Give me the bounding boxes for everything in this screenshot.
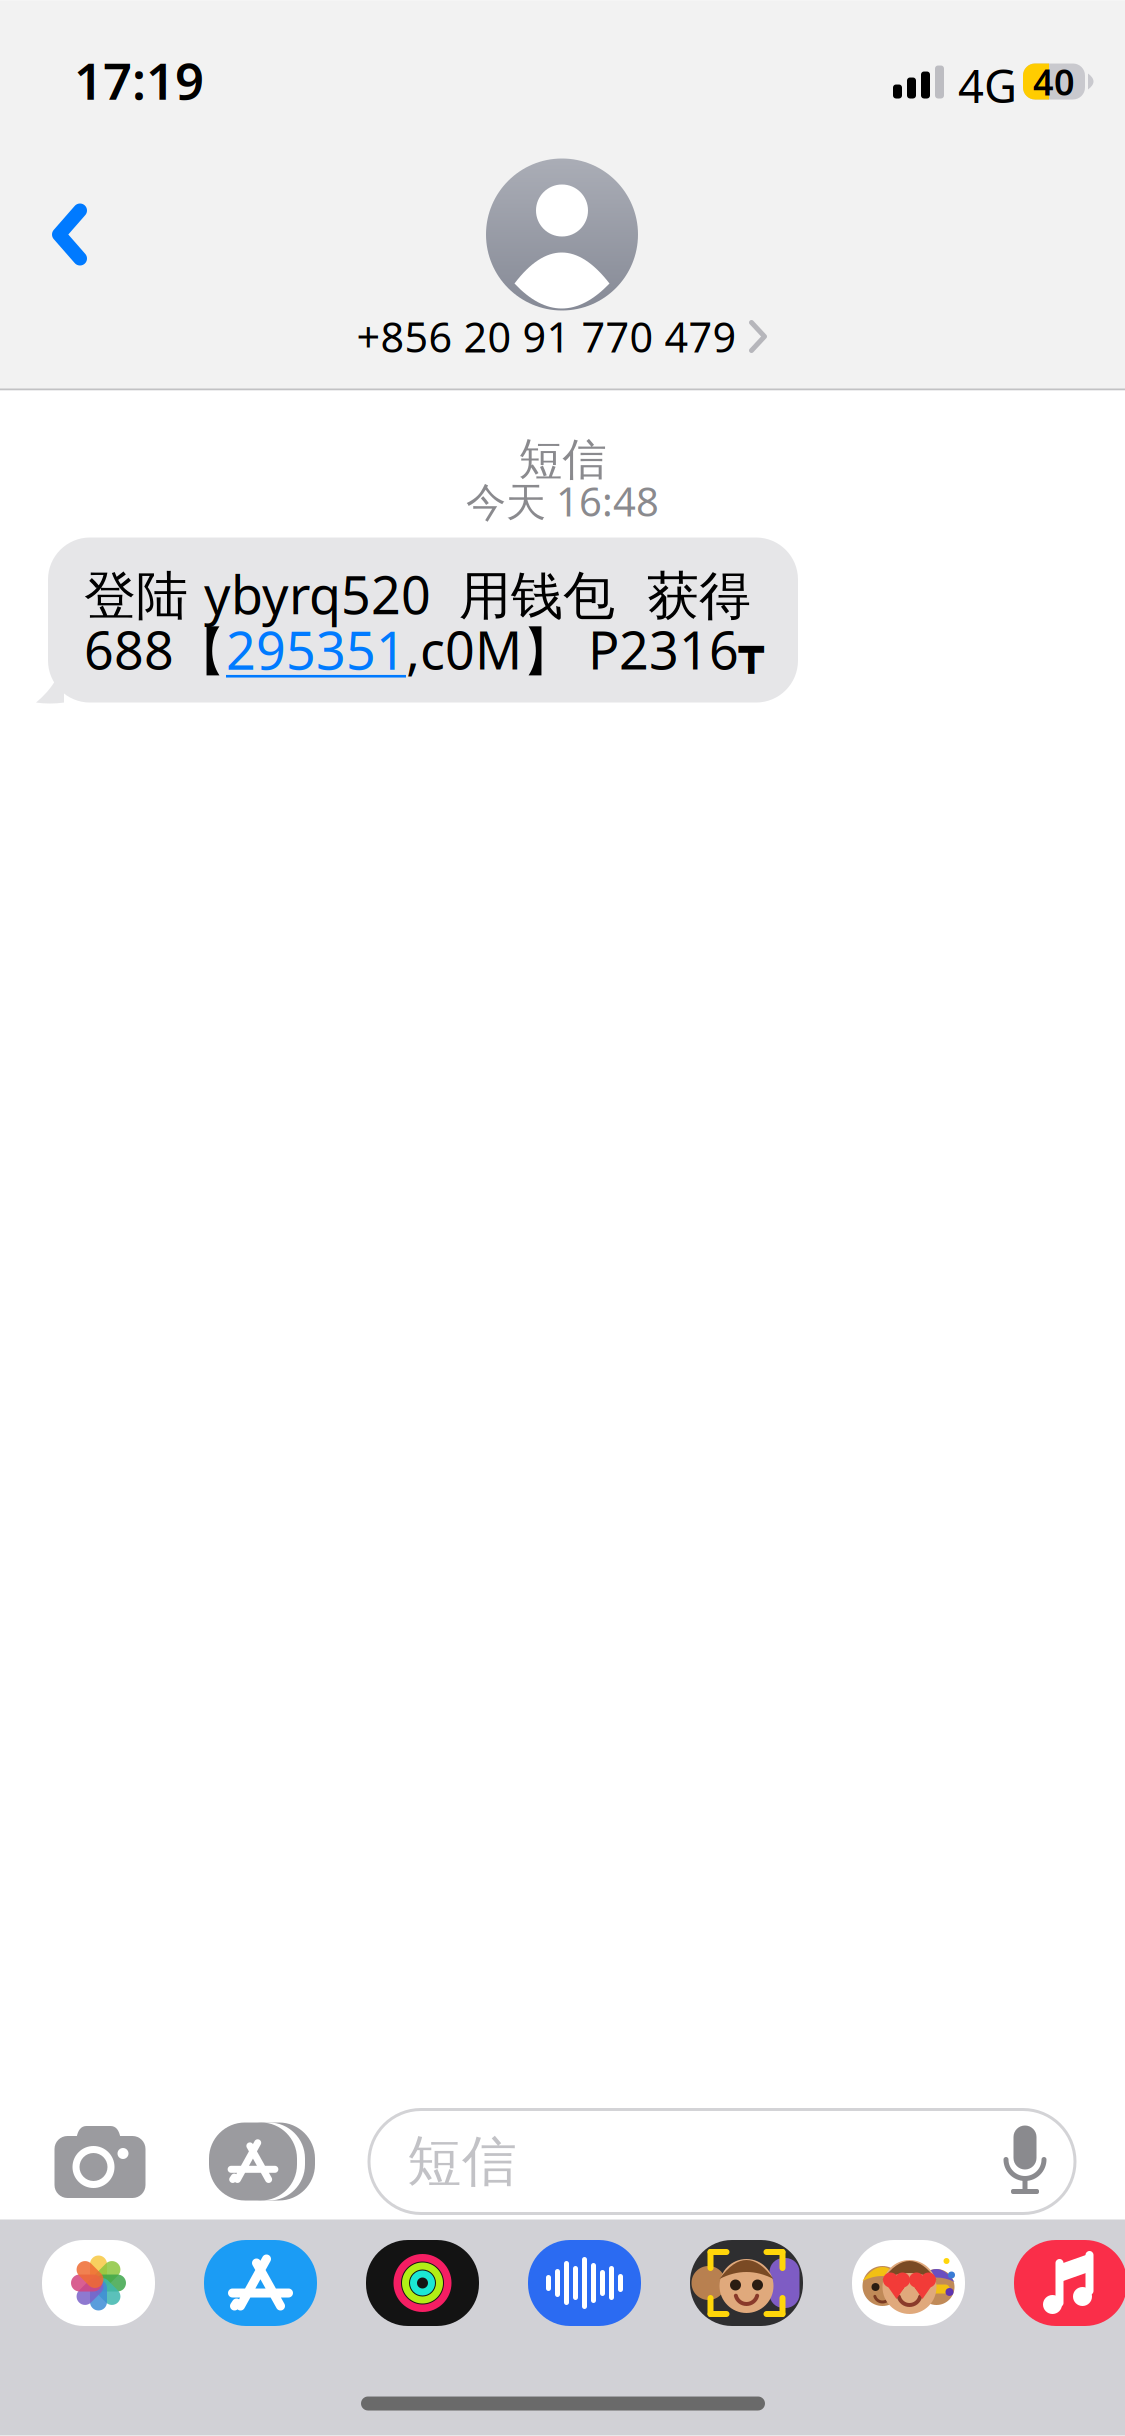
button[interactable]: Back: [4, 169, 134, 299]
staticText: 今天 16:48: [466, 474, 659, 528]
button[interactable]: Camera: [42, 2103, 158, 2219]
staticText: 688【: [84, 615, 226, 684]
staticText: ┳: [739, 626, 764, 673]
button[interactable]: Music: [1014, 2240, 1125, 2326]
button[interactable]: 短信: [369, 2109, 1075, 2213]
staticText: 登陆 ybyrq520 用钱包 获得: [84, 559, 751, 629]
button[interactable]: Memoji: [690, 2240, 803, 2326]
button[interactable]: Apps: [204, 2103, 320, 2219]
button[interactable]: Fitness: [366, 2240, 479, 2326]
staticText: 40: [1033, 58, 1075, 105]
staticText: 17:19: [74, 46, 204, 114]
staticText: 短信: [407, 2128, 517, 2195]
button[interactable]: App Store: [204, 2240, 317, 2326]
staticText: 短信: [518, 432, 606, 486]
button[interactable]: Memoji Stickers: [852, 2240, 965, 2326]
button[interactable]: Photos: [42, 2240, 155, 2326]
staticText: +856 20 91 770 479: [356, 309, 736, 364]
staticText: ,c0M】 P2316: [406, 615, 739, 684]
staticText: 295351: [226, 615, 406, 684]
button[interactable]: Audio Messages: [528, 2240, 641, 2326]
staticText: 4G: [958, 55, 1017, 115]
button[interactable]: +856 20 91 770 479: [262, 158, 862, 362]
